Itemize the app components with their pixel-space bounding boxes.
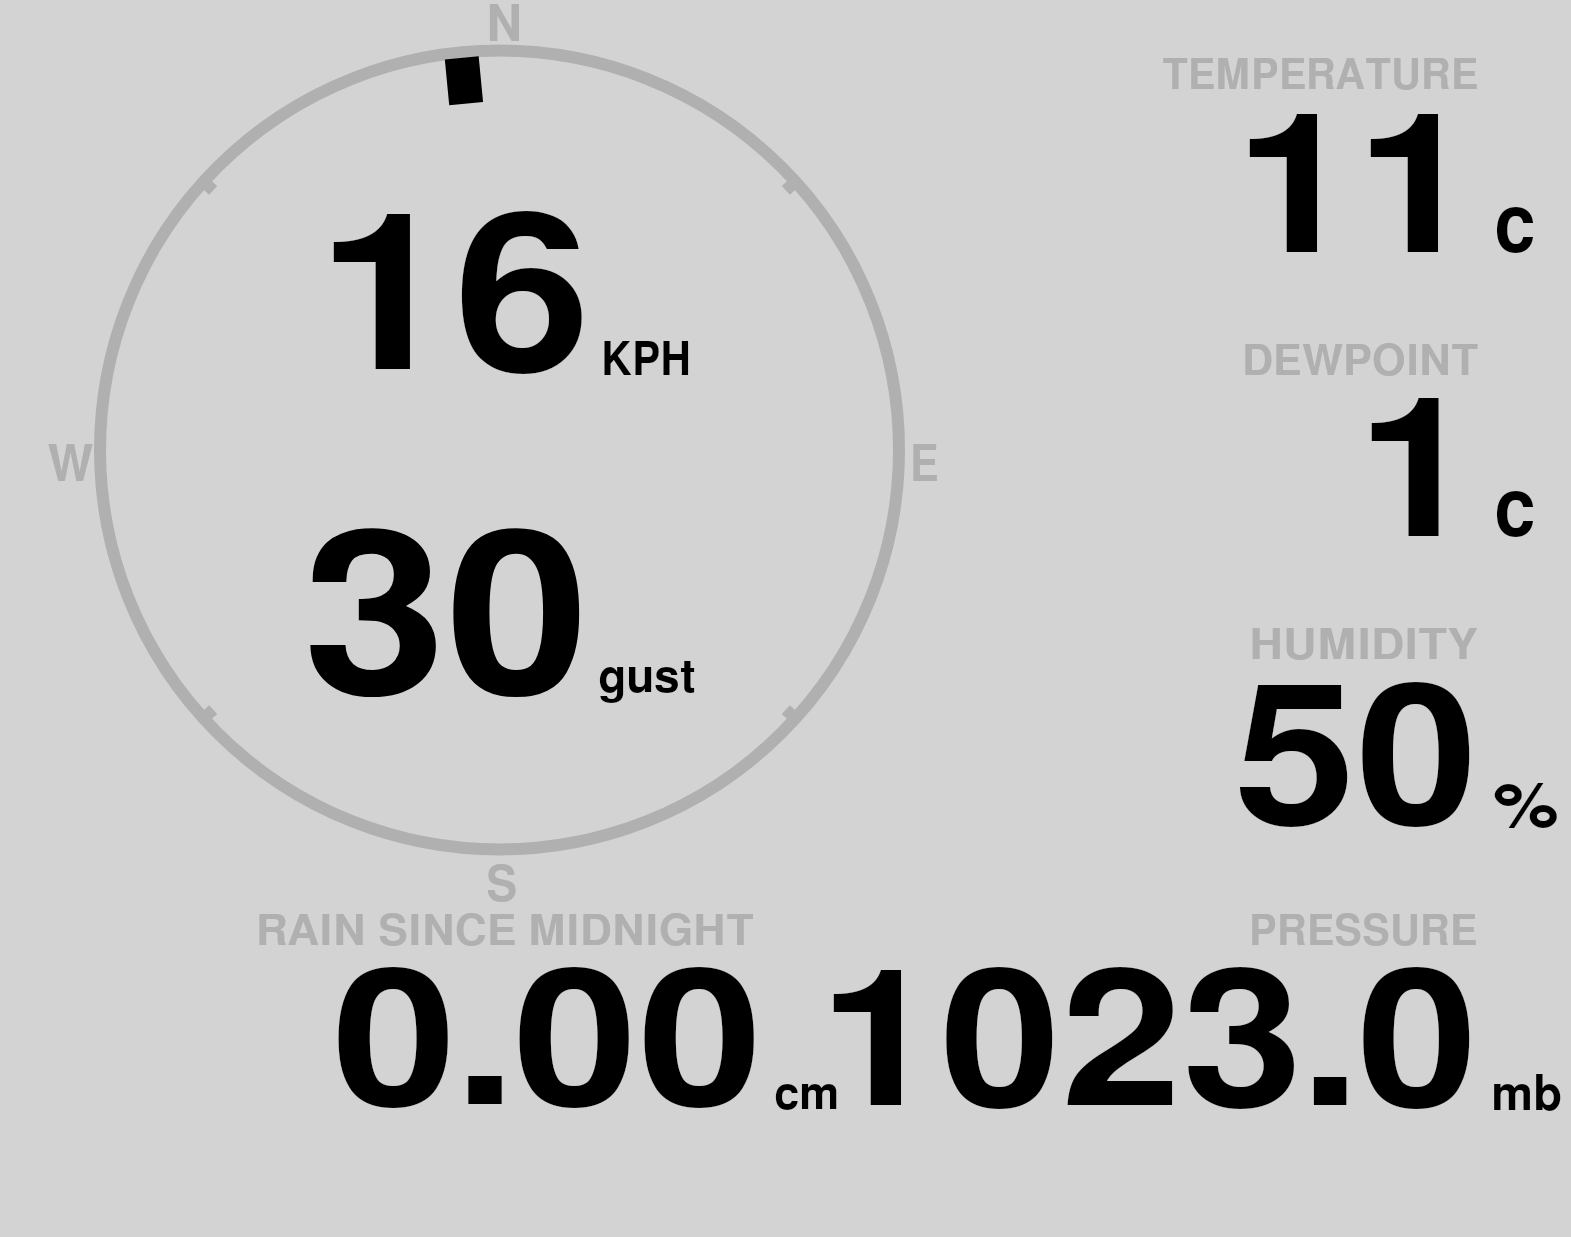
button[interactable]: Rain since midnight 0.00 cm xyxy=(250,905,850,1115)
button[interactable]: Wind direction compass, 16 KPH, gusting … xyxy=(40,0,980,910)
button[interactable]: Temperature 11 C xyxy=(1140,45,1571,260)
button[interactable]: Pressure 1023.0 mb xyxy=(855,905,1571,1115)
button[interactable]: Dewpoint 1 C xyxy=(1140,330,1571,545)
button[interactable]: Humidity 50 percent xyxy=(1140,615,1571,835)
